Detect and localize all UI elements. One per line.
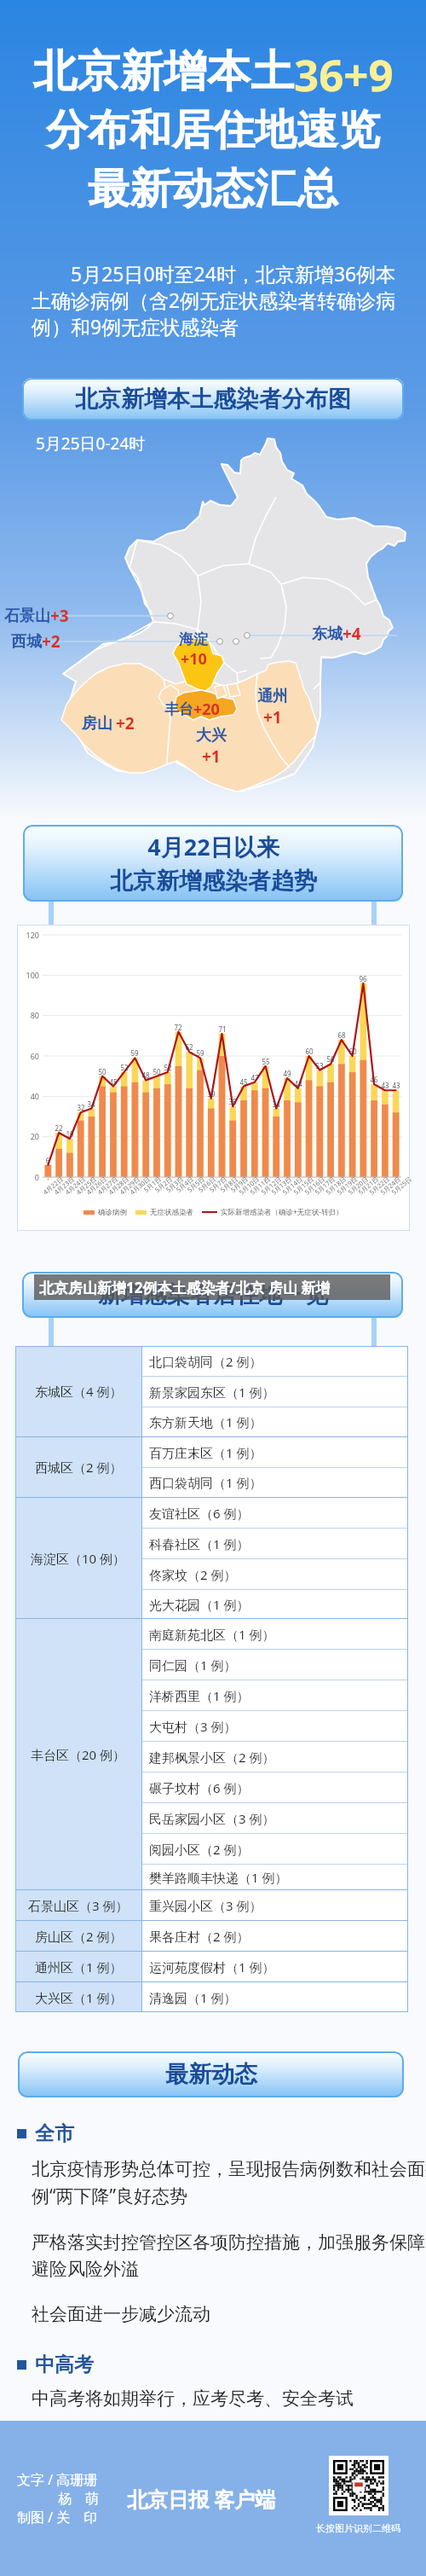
staticText: 100 (19, 970, 39, 980)
staticText: 民岳家园小区（3 例） (149, 1810, 275, 1827)
staticText: 5月17日 (302, 1175, 337, 1205)
staticText: 分布和居住地速览 (46, 104, 380, 157)
staticText: 确诊病例 (98, 1208, 127, 1217)
staticText: 西城 (11, 632, 42, 652)
staticText: 39 (203, 1089, 220, 1099)
staticText: 5月21日 (346, 1175, 380, 1205)
staticText: 5月6日 (183, 1175, 217, 1205)
staticText: 59 (126, 1048, 143, 1058)
staticText: 房山 (82, 714, 112, 734)
button[interactable]: 最新动态 (18, 2051, 404, 2097)
staticText: 34 (83, 1099, 100, 1109)
button[interactable]: 北京房山新增12例本土感染者/北京 房山 新增 (34, 1274, 390, 1300)
staticText: 严格落实封控管控区各项防控措施，加强服务保障，避险风险外溢 (32, 2231, 426, 2280)
staticText: 5月10日 (227, 1175, 261, 1205)
staticText: 海淀区（10 例） (31, 1550, 126, 1567)
staticText: 5月13日 (259, 1175, 293, 1205)
staticText: 50 (94, 1067, 111, 1076)
staticText: 35 (224, 1097, 241, 1106)
staticText: 北京日报 客户端 (127, 2485, 276, 2513)
staticText: 4月24日 (53, 1175, 87, 1205)
staticText: 59 (192, 1048, 209, 1058)
staticText: 44 (290, 1079, 307, 1088)
staticText: 佟家坟（2 例） (149, 1566, 237, 1583)
staticText: 60 (301, 1047, 318, 1056)
staticText: 5月12日 (249, 1175, 283, 1205)
staticText: 36+9 (294, 44, 394, 103)
staticText: 新增感染者居住地一览 (98, 1280, 328, 1309)
staticText: 全市 (35, 2121, 74, 2146)
staticText: 洋桥西里（1 例） (149, 1687, 250, 1704)
staticText: 大屯村（3 例） (149, 1718, 237, 1735)
staticText: 4月26日 (74, 1175, 108, 1205)
staticText: 47 (246, 1073, 263, 1082)
staticText: 34 (268, 1099, 285, 1109)
staticText: 实际新增感染者（确诊+无症状-转归） (221, 1207, 343, 1217)
staticText: 5月8日 (205, 1175, 239, 1205)
staticText: 石景山区（3 例） (28, 1897, 129, 1914)
staticText: 最新动态汇总 (88, 163, 338, 216)
staticText: 46 (366, 1075, 383, 1084)
staticText: 土确诊病例（含2例无症状感染者转确诊病 (32, 287, 396, 313)
staticText: 5月24日 (368, 1175, 402, 1205)
staticText: 5月4日 (161, 1175, 195, 1205)
staticText: 阅园小区（2 例） (149, 1841, 250, 1858)
staticText: 5月19日 (325, 1175, 359, 1205)
staticText: 5月25日0-24时 (36, 432, 146, 455)
staticText: 5月16日 (292, 1175, 326, 1205)
staticText: 52 (159, 1063, 176, 1072)
staticText: 5月5日 (172, 1175, 206, 1205)
staticText: 北京新增本土 (33, 44, 294, 99)
staticText: 海淀 (179, 630, 208, 648)
staticText: 北京疫情形势总体可控，呈现报告病例数和社会面病例“两下降”良好态势 (32, 2158, 426, 2208)
staticText: 社会面进一步减少流动 (32, 2303, 210, 2325)
staticText: 53 (311, 1061, 328, 1070)
staticText: 56 (322, 1054, 339, 1064)
staticText: 果各庄村（2 例） (149, 1928, 250, 1945)
staticText: 22 (50, 1123, 67, 1133)
staticText: 72 (170, 1023, 187, 1032)
staticText: 4月22日 (31, 1175, 65, 1205)
staticText: 68 (333, 1030, 350, 1040)
staticText: 5月7日 (194, 1175, 228, 1205)
staticText: 建邦枫景小区（2 例） (149, 1749, 275, 1766)
staticText: +2 (42, 630, 60, 653)
staticText: 43 (377, 1081, 394, 1090)
staticText: 5月25日 (379, 1175, 413, 1205)
staticText: 49 (279, 1069, 296, 1078)
staticText: 友谊社区（6 例） (149, 1505, 250, 1522)
staticText: 4月22日以来 (147, 831, 279, 862)
staticText: 百万庄末区（1 例） (149, 1444, 262, 1461)
staticText: 大兴区（1 例） (35, 1989, 123, 2006)
staticText: 杨 萌 (17, 2489, 99, 2508)
button[interactable]: 北京新增本土感染者分布图 (22, 378, 404, 421)
button[interactable]: 4月22日以来 (23, 825, 403, 902)
staticText: 0 (19, 1172, 39, 1182)
staticText: 中高考 (35, 2353, 94, 2377)
staticText: 5月1日 (129, 1175, 163, 1205)
staticText: 房山区（2 例） (35, 1928, 123, 1945)
staticText: +1 (202, 746, 221, 768)
staticText: 5月11日 (238, 1175, 272, 1205)
staticText: 文字 / 高珊珊 (17, 2470, 98, 2489)
staticText: 55 (257, 1057, 274, 1066)
staticText: 新景家园东区（1 例） (149, 1384, 275, 1401)
staticText: 科春社区（1 例） (149, 1535, 250, 1552)
staticText: 运河苑度假村（1 例） (149, 1958, 275, 1976)
staticText: 62 (181, 1042, 198, 1052)
staticText: +10 (181, 648, 207, 670)
staticText: 43 (388, 1081, 405, 1090)
staticText: 32 (72, 1103, 89, 1112)
staticText: 5月15日 (281, 1175, 315, 1205)
staticText: 例）和9例无症状感染者 (32, 313, 239, 339)
staticText: 5月22日 (357, 1175, 391, 1205)
staticText: 4月25日 (64, 1175, 98, 1205)
staticText: 40 (19, 1091, 39, 1101)
staticText: 丰台区（20 例） (31, 1746, 126, 1763)
staticText: 120 (19, 930, 39, 940)
staticText: 19 (61, 1129, 78, 1139)
staticText: 通州 (257, 687, 288, 706)
button[interactable]: 新增感染者居住地一览 (22, 1272, 403, 1318)
staticText: 南庭新苑北区（1 例） (149, 1626, 275, 1643)
staticText: 5月3日 (151, 1175, 185, 1205)
